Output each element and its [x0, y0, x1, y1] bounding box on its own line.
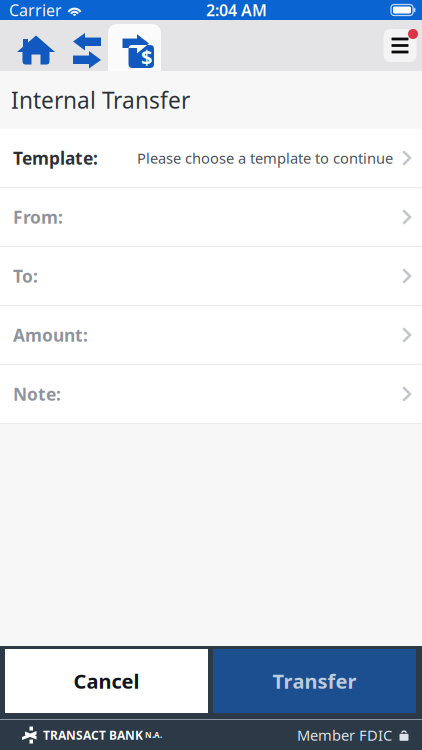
button[interactable]: Transfer — [213, 649, 416, 713]
button[interactable]: Transfers — [56, 20, 108, 71]
staticText: 2:04 AM — [206, 0, 267, 21]
staticText: $ — [141, 44, 152, 70]
button[interactable]: Note: — [0, 365, 422, 424]
button[interactable]: Menu — [378, 20, 422, 71]
staticText: N.A. — [143, 730, 162, 740]
button[interactable]: Amount: — [0, 306, 422, 365]
staticText: Internal Transfer — [11, 85, 190, 115]
staticText: Member FDIC — [297, 725, 392, 745]
button[interactable]: Cancel — [5, 649, 208, 713]
staticText: Cancel — [73, 668, 139, 694]
button[interactable]: From: — [0, 188, 422, 247]
button[interactable]: To: — [0, 247, 422, 306]
button[interactable]: Home — [0, 20, 56, 71]
staticText: Note: — [13, 382, 61, 405]
button[interactable]: Internal Transfer — [108, 20, 161, 71]
staticText: Carrier — [9, 0, 62, 21]
button[interactable]: Template: — [0, 129, 422, 188]
staticText: To: — [13, 264, 38, 287]
staticText: Amount: — [13, 323, 88, 346]
staticText: From: — [13, 205, 63, 228]
staticText: Transfer — [272, 668, 356, 694]
staticText: Please choose a template to continue — [137, 148, 393, 168]
staticText: TRANSACT BANK — [43, 727, 143, 743]
staticText: Template: — [13, 146, 98, 169]
